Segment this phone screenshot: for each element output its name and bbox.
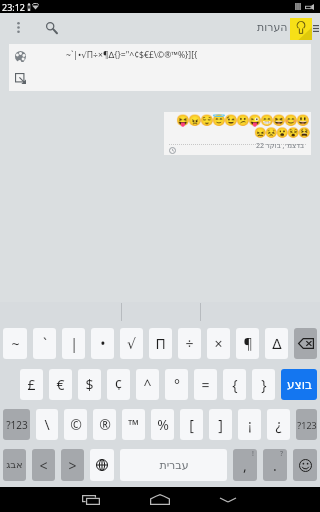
button[interactable]: ¶ — [236, 328, 259, 359]
staticText: 😃 — [296, 114, 310, 127]
staticText: ~ — [11, 334, 20, 353]
button[interactable]: ® — [93, 409, 116, 440]
staticText: 😌 — [200, 114, 214, 127]
staticText: ∆ — [272, 336, 282, 352]
button[interactable]: √ — [120, 328, 143, 359]
button[interactable]: € — [49, 369, 72, 400]
button[interactable]: אבג — [3, 449, 26, 481]
staticText: $ — [85, 375, 94, 394]
button[interactable]: ÷ — [178, 328, 201, 359]
staticText: √ — [127, 336, 136, 352]
staticText: 😵 — [287, 127, 300, 139]
staticText: 😣 — [265, 127, 278, 139]
staticText: 😠 — [188, 114, 202, 127]
button[interactable]: Π — [149, 328, 172, 359]
button[interactable]: > — [61, 449, 84, 481]
button[interactable]: , — [233, 449, 257, 481]
staticText: 😖 — [254, 127, 267, 139]
staticText: € — [56, 375, 65, 394]
button[interactable]: ¿ — [267, 409, 290, 440]
staticText: 😫 — [298, 127, 311, 139]
button[interactable]: emoji — [293, 449, 317, 481]
staticText: עברית — [159, 459, 189, 472]
staticText: ¿ — [275, 415, 282, 434]
staticText: ` — [43, 334, 47, 353]
button[interactable]: Search — [43, 19, 59, 35]
button[interactable]: ] — [209, 409, 232, 440]
button[interactable]: ?123 — [296, 409, 317, 440]
button[interactable]: £ — [20, 369, 43, 400]
button[interactable]: בוצע — [281, 369, 317, 400]
button[interactable]: ∆ — [265, 328, 288, 359]
button[interactable]: Hide keyboard — [213, 487, 243, 512]
button[interactable]: © — [64, 409, 87, 440]
button[interactable]: globe — [90, 449, 114, 481]
staticText: 😕 — [236, 114, 250, 127]
staticText: ? — [280, 449, 284, 459]
staticText: 23:12 — [2, 1, 26, 13]
staticText: × — [214, 334, 223, 353]
staticText: } — [261, 375, 267, 394]
button[interactable]: < — [32, 449, 55, 481]
staticText: | — [70, 334, 78, 353]
button[interactable]: { — [223, 369, 246, 400]
staticText: . — [273, 456, 277, 475]
button[interactable]: ¢ — [107, 369, 130, 400]
button[interactable]: | — [62, 328, 85, 359]
button[interactable]: ` — [33, 328, 56, 359]
button[interactable]: . — [263, 449, 287, 481]
staticText: הערות — [257, 21, 288, 34]
staticText: ÷ — [185, 334, 194, 353]
staticText: ® — [99, 415, 111, 434]
staticText: בוצע — [287, 378, 312, 392]
staticText: 😁 — [260, 114, 274, 127]
staticText: 😉 — [224, 114, 238, 127]
staticText: ] — [218, 415, 223, 434]
staticText: = — [201, 375, 210, 394]
button[interactable]: Menu — [311, 21, 320, 35]
staticText: < — [39, 456, 48, 475]
button[interactable]: [ — [180, 409, 203, 440]
button[interactable]: = — [194, 369, 217, 400]
button[interactable]: עברית — [120, 449, 227, 481]
button[interactable]: • — [91, 328, 114, 359]
staticText: 😆 — [272, 114, 286, 127]
button[interactable]: Color palette — [13, 49, 27, 63]
staticText: 😜 — [248, 114, 262, 127]
staticText: © — [70, 415, 82, 434]
staticText: \ — [44, 415, 50, 434]
staticText: ¶ — [243, 334, 253, 353]
button[interactable]: \ — [36, 409, 58, 440]
staticText: ¡ — [248, 415, 252, 434]
staticText: , — [243, 456, 247, 475]
button[interactable]: $ — [78, 369, 101, 400]
staticText: { — [232, 375, 238, 394]
button[interactable]: ™ — [122, 409, 145, 440]
staticText: Π — [155, 334, 166, 353]
button[interactable]: × — [207, 328, 230, 359]
staticText: 😇 — [212, 114, 226, 127]
button[interactable]: ?123 — [3, 409, 30, 440]
button[interactable]: ° — [165, 369, 188, 400]
button[interactable]: Google Keep — [290, 18, 312, 40]
staticText: £ — [27, 375, 36, 394]
staticText: אבג — [6, 459, 23, 471]
staticText: ?123 — [297, 419, 317, 431]
button[interactable]: Recents — [76, 487, 106, 512]
staticText: ™ — [128, 415, 139, 434]
button[interactable]: } — [252, 369, 275, 400]
button[interactable]: ~ — [3, 328, 27, 359]
button[interactable]: ¡ — [238, 409, 261, 440]
staticText: ° — [174, 375, 180, 394]
staticText: ~`|•√Π÷×¶∆{}="^¢$€£\©®™%}][{ — [66, 49, 198, 61]
button[interactable]: Home — [145, 487, 175, 512]
staticText: 22 בדצמ׳, בוקר — [256, 141, 305, 151]
button[interactable]: More options — [10, 17, 26, 37]
button[interactable]: bksp — [294, 328, 317, 359]
staticText: [ — [189, 415, 194, 434]
button[interactable]: ^ — [136, 369, 159, 400]
button[interactable]: % — [151, 409, 174, 440]
button[interactable]: Resize — [13, 71, 27, 85]
staticText: ! — [252, 449, 254, 459]
staticText: • — [100, 334, 106, 353]
